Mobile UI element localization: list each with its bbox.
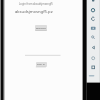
button[interactable]	[89, 27, 97, 31]
staticText: SIGN IN	[37, 63, 46, 66]
button[interactable]	[89, 74, 97, 78]
button[interactable]: SIGN IN	[36, 62, 47, 67]
staticText: Login from aksudsjmxsngf5	[19, 2, 53, 6]
button[interactable]	[89, 17, 97, 21]
button[interactable]: REGISTER	[35, 25, 47, 31]
button[interactable]	[89, 8, 97, 12]
staticText: REGISTER	[36, 27, 46, 30]
button[interactable]	[89, 56, 97, 60]
button[interactable]	[89, 46, 97, 50]
staticText: aksudsjmxsngf5.pz	[15, 9, 53, 15]
button[interactable]	[89, 66, 97, 70]
button[interactable]	[89, 0, 97, 4]
button[interactable]	[89, 35, 97, 39]
